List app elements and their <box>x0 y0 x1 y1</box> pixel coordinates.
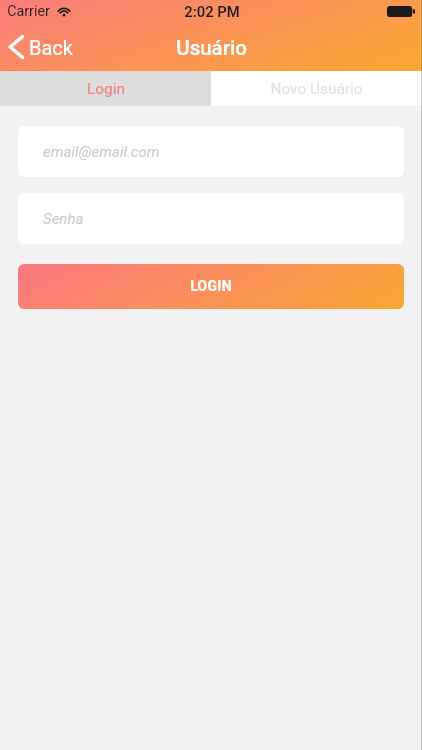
button[interactable]: Senha <box>18 193 404 244</box>
button[interactable]: Login <box>0 71 211 106</box>
staticText: Usuário <box>176 36 247 60</box>
button[interactable]: LOGIN <box>18 264 404 309</box>
staticText: Login <box>87 80 125 98</box>
staticText: LOGIN <box>190 278 232 294</box>
button[interactable]: Novo Usuário <box>211 71 422 106</box>
staticText: 2:02 PM <box>184 3 240 20</box>
button[interactable]: email@email.com <box>18 126 404 177</box>
button[interactable]: Back <box>5 34 75 60</box>
staticText: Back <box>29 36 73 59</box>
staticText: Novo Usuário <box>270 80 363 98</box>
staticText: email@email.com <box>43 143 160 161</box>
staticText: Carrier <box>7 3 50 20</box>
staticText: Senha <box>43 210 84 228</box>
